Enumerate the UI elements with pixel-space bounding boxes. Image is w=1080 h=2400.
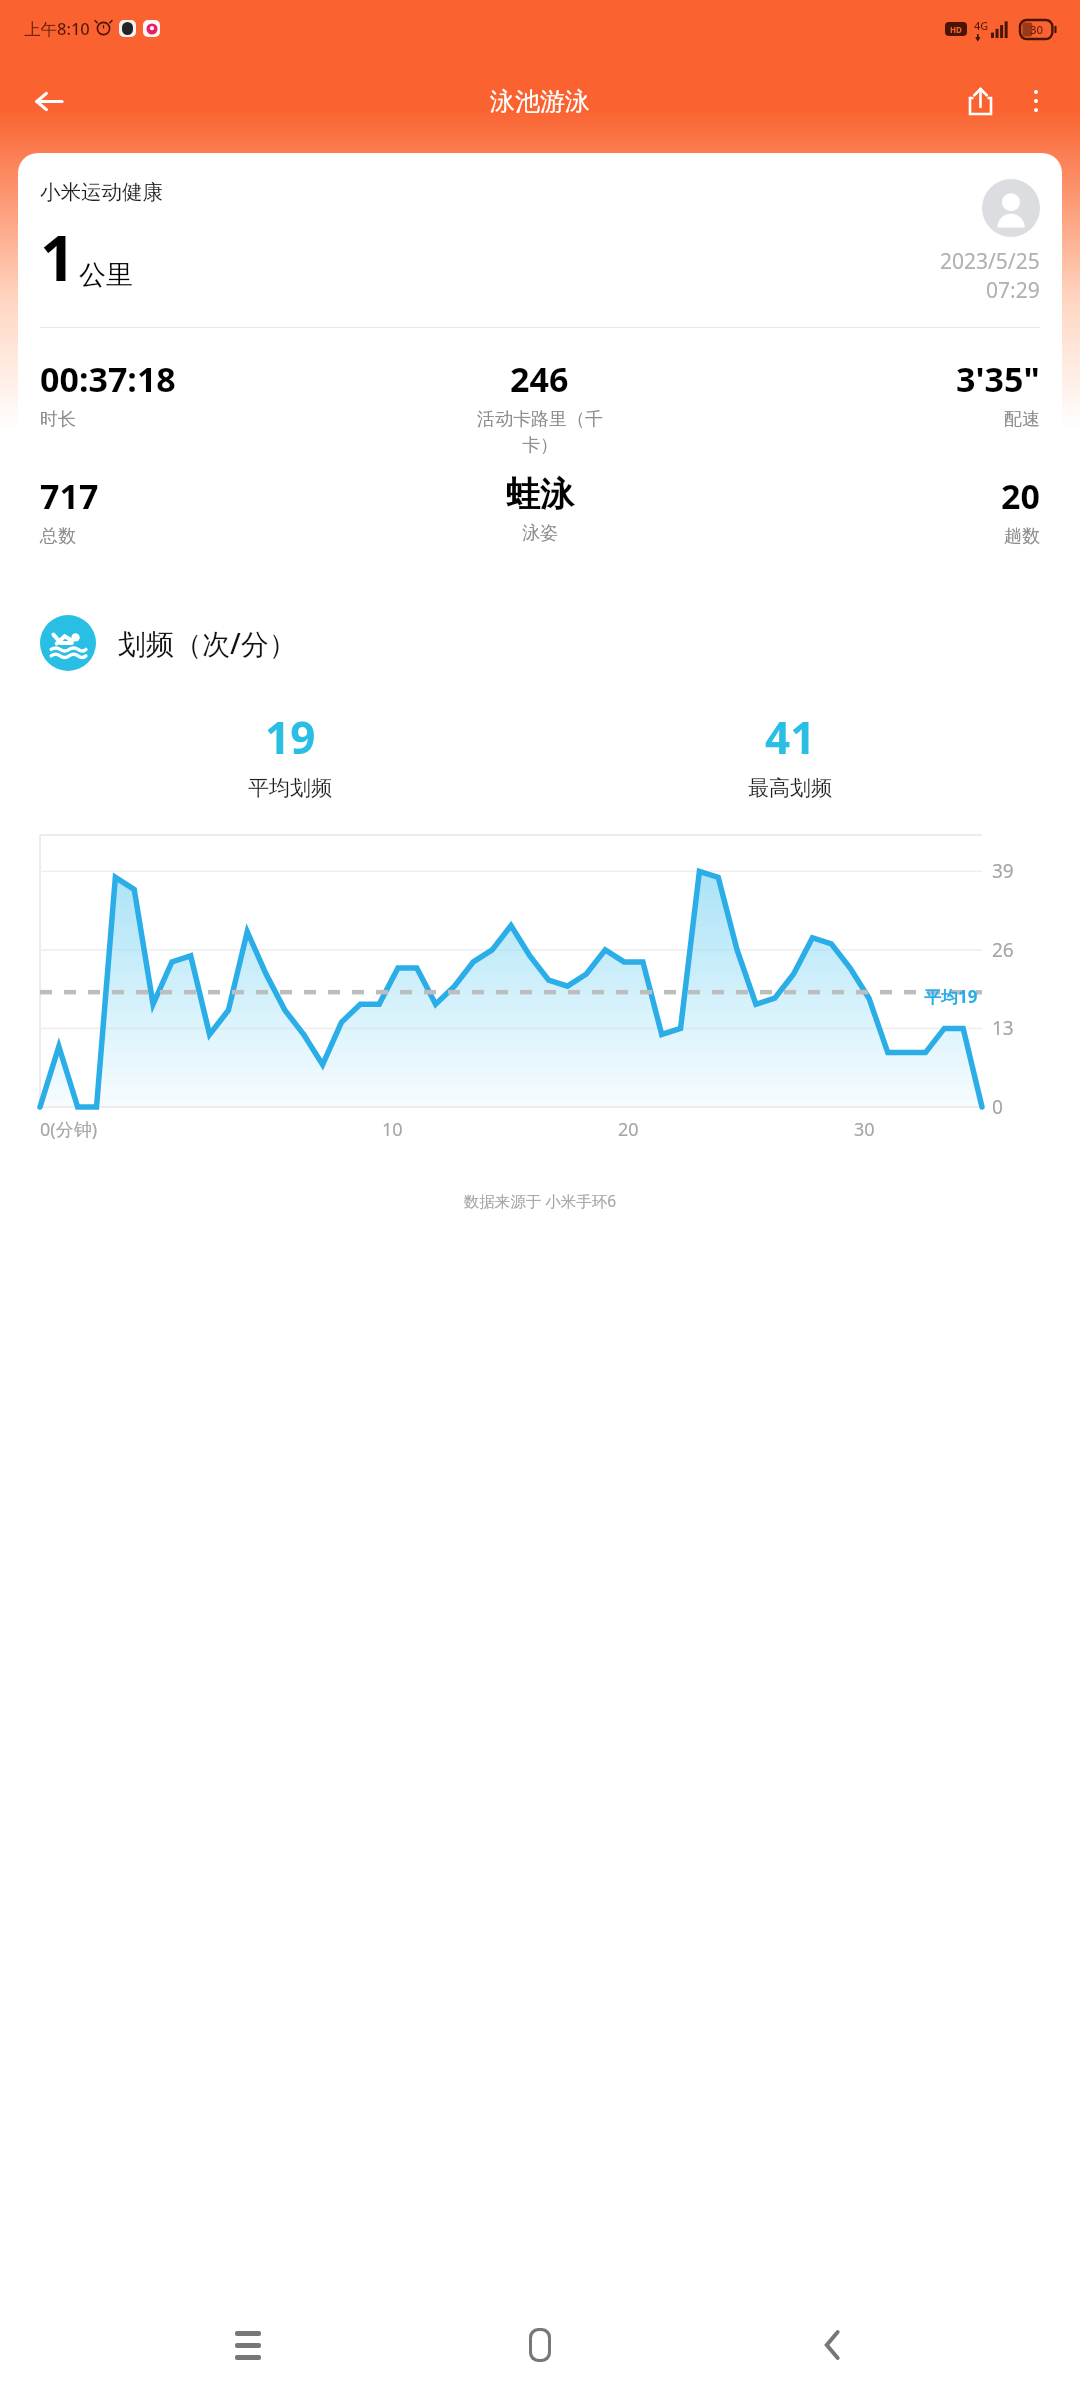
staticText: 总数	[40, 525, 76, 548]
button[interactable]: Home	[495, 2300, 585, 2390]
button[interactable]: Recent apps	[203, 2300, 293, 2390]
staticText: 13	[992, 1015, 1014, 1041]
staticText: 10	[382, 1117, 403, 1142]
button[interactable]: Back	[788, 2300, 878, 2390]
button[interactable]: 小米运动健康	[18, 153, 1062, 578]
staticText: 趟数	[1004, 525, 1040, 548]
staticText: 划频（次/分）	[118, 624, 297, 662]
staticText: 蛙泳	[506, 473, 574, 516]
staticText: 20	[618, 1117, 639, 1142]
staticText: 07:29	[986, 276, 1040, 305]
staticText: 26	[992, 937, 1014, 963]
staticText: 3'35"	[956, 356, 1040, 402]
staticText: 39	[992, 858, 1014, 884]
staticText: 246	[510, 356, 569, 402]
button[interactable]: More options	[1008, 73, 1064, 129]
staticText: 泳池游泳	[490, 86, 590, 117]
staticText: 30	[854, 1117, 875, 1142]
staticText: 00:37:18	[40, 356, 176, 402]
staticText: 30	[1030, 22, 1044, 38]
staticText: 最高划频	[748, 775, 832, 801]
staticText: 4G	[974, 18, 989, 33]
staticText: 小米运动健康	[40, 179, 163, 205]
staticText: 数据来源于 小米手环6	[0, 1190, 1080, 1211]
staticText: 泳姿	[522, 522, 558, 545]
staticText: 0	[992, 1094, 1003, 1120]
staticText: 平均划频	[248, 775, 332, 801]
staticText: 41	[765, 707, 816, 767]
staticText: 上午8:10	[24, 17, 90, 40]
staticText: 0(分钟)	[40, 1117, 98, 1142]
button[interactable]: Back	[20, 73, 76, 129]
staticText: 2023/5/25	[940, 247, 1040, 276]
staticText: HD	[950, 24, 962, 35]
staticText: 时长	[40, 408, 76, 431]
staticText: 20	[1001, 473, 1040, 519]
staticText: 配速	[1004, 408, 1040, 431]
staticText: 公里	[79, 258, 133, 292]
button[interactable]: Share	[952, 73, 1008, 129]
staticText: 活动卡路里（千 卡）	[477, 408, 603, 457]
button[interactable]: 划频（次/分）	[18, 591, 1062, 1160]
staticText: 1	[40, 215, 76, 299]
staticText: 平均19	[924, 985, 978, 1008]
staticText: 19	[265, 707, 316, 767]
staticText: 717	[40, 473, 99, 519]
